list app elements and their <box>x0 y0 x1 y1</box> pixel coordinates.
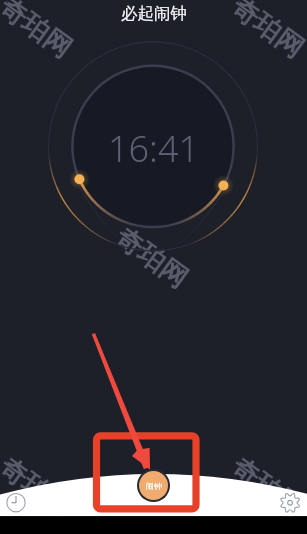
staticText: 16:41 <box>108 124 200 173</box>
button[interactable]: 闹钟 <box>137 469 170 502</box>
staticText: 闹钟 <box>146 481 162 491</box>
button[interactable]: Clock <box>3 489 30 516</box>
staticText: 必起闹钟 <box>121 3 187 24</box>
button[interactable]: Settings <box>276 488 303 515</box>
